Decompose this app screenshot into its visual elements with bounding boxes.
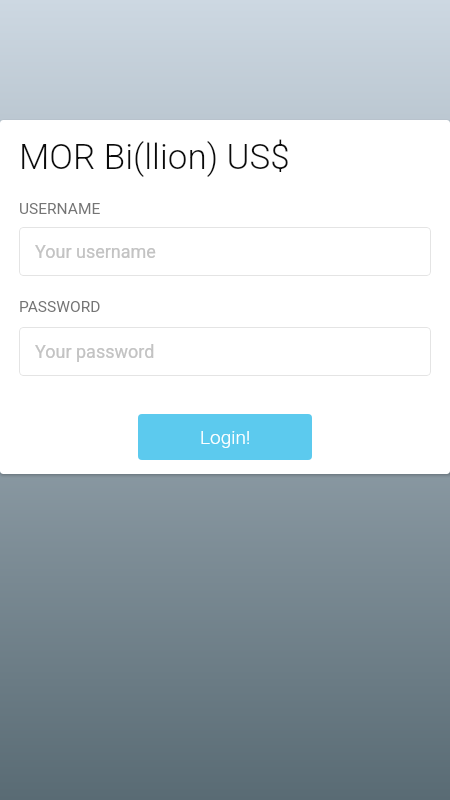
staticText: Your username bbox=[35, 241, 156, 262]
button[interactable]: Login! bbox=[138, 414, 312, 460]
staticText: PASSWORD bbox=[19, 298, 101, 316]
staticText: Login! bbox=[200, 426, 251, 448]
button[interactable]: Your password bbox=[19, 327, 431, 376]
staticText: USERNAME bbox=[19, 200, 101, 218]
staticText: Your password bbox=[35, 341, 155, 362]
button[interactable]: Your username bbox=[19, 227, 431, 276]
staticText: MOR Bi(llion) US$ bbox=[19, 137, 290, 178]
